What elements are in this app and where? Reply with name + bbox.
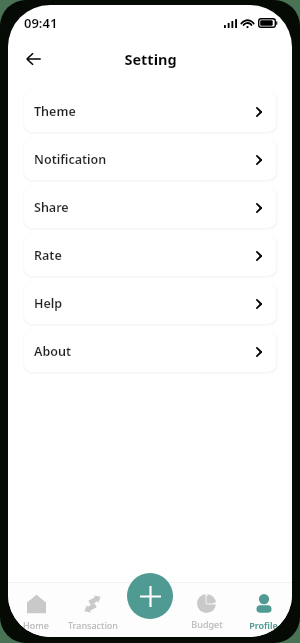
staticText: Notification <box>34 151 107 168</box>
button[interactable]: Theme <box>24 91 276 132</box>
button[interactable]: About <box>24 331 276 372</box>
staticText: Setting <box>124 49 177 69</box>
staticText: Home <box>23 619 49 631</box>
staticText: Theme <box>34 103 76 120</box>
button[interactable]: Help <box>24 283 276 324</box>
button[interactable]: Rate <box>24 235 276 276</box>
button[interactable]: Budget <box>178 594 235 630</box>
button[interactable]: Back <box>19 45 47 73</box>
staticText: 09:41 <box>24 14 58 32</box>
staticText: About <box>34 343 71 360</box>
button[interactable]: Transaction <box>64 594 121 631</box>
staticText: Rate <box>34 247 62 264</box>
staticText: Budget <box>191 618 223 630</box>
button[interactable]: Notification <box>24 139 276 180</box>
button[interactable]: Share <box>24 187 276 228</box>
button[interactable]: Add <box>127 573 173 619</box>
staticText: Transaction <box>68 619 118 631</box>
button[interactable]: Home <box>8 594 64 631</box>
staticText: Share <box>34 199 69 216</box>
button[interactable]: Profile <box>235 594 292 631</box>
staticText: Profile <box>249 619 278 631</box>
staticText: Help <box>34 295 63 312</box>
